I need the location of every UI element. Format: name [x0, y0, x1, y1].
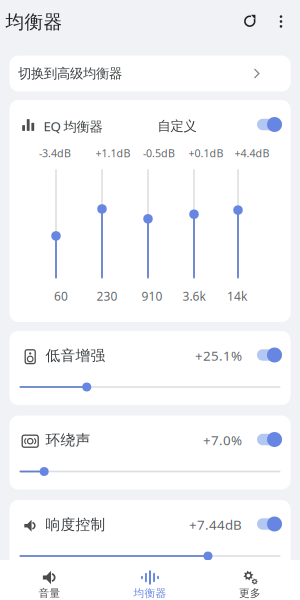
button[interactable]: 均衡器	[102, 560, 198, 600]
button[interactable]: 开关	[257, 431, 282, 447]
staticText: +4.4dB	[234, 146, 269, 160]
staticText: 切换到高级均衡器	[18, 65, 122, 82]
staticText: 均衡器	[5, 10, 62, 33]
staticText: +0.1dB	[188, 146, 223, 160]
staticText: 响度控制	[45, 515, 105, 533]
button[interactable]: 更多选项	[268, 6, 294, 36]
staticText: 230	[96, 288, 117, 304]
button[interactable]: 开关	[257, 516, 282, 532]
staticText: 自定义	[157, 118, 196, 134]
staticText: +7.44dB	[189, 516, 242, 533]
staticText: +7.0%	[203, 431, 242, 449]
staticText: 14k	[227, 288, 247, 304]
staticText: -0.5dB	[143, 146, 175, 160]
button[interactable]: 切换到高级均衡器	[9, 55, 290, 91]
staticText: 更多	[239, 587, 261, 600]
button[interactable]: 重置	[235, 6, 265, 36]
staticText: 低音增强	[45, 346, 105, 364]
staticText: 60	[54, 288, 68, 304]
staticText: 环绕声	[45, 431, 90, 449]
button[interactable]: 更多	[202, 560, 298, 600]
staticText: -3.4dB	[39, 146, 71, 160]
staticText: EQ 均衡器	[43, 117, 102, 135]
staticText: 均衡器	[133, 587, 166, 600]
staticText: 3.6k	[182, 288, 205, 304]
button[interactable]: 开关	[257, 116, 282, 132]
staticText: +25.1%	[195, 347, 242, 364]
staticText: 音量	[38, 587, 60, 600]
staticText: 910	[141, 288, 162, 304]
staticText: +1.1dB	[95, 146, 130, 160]
button[interactable]: 音量	[1, 560, 97, 600]
button[interactable]: 开关	[257, 347, 282, 363]
